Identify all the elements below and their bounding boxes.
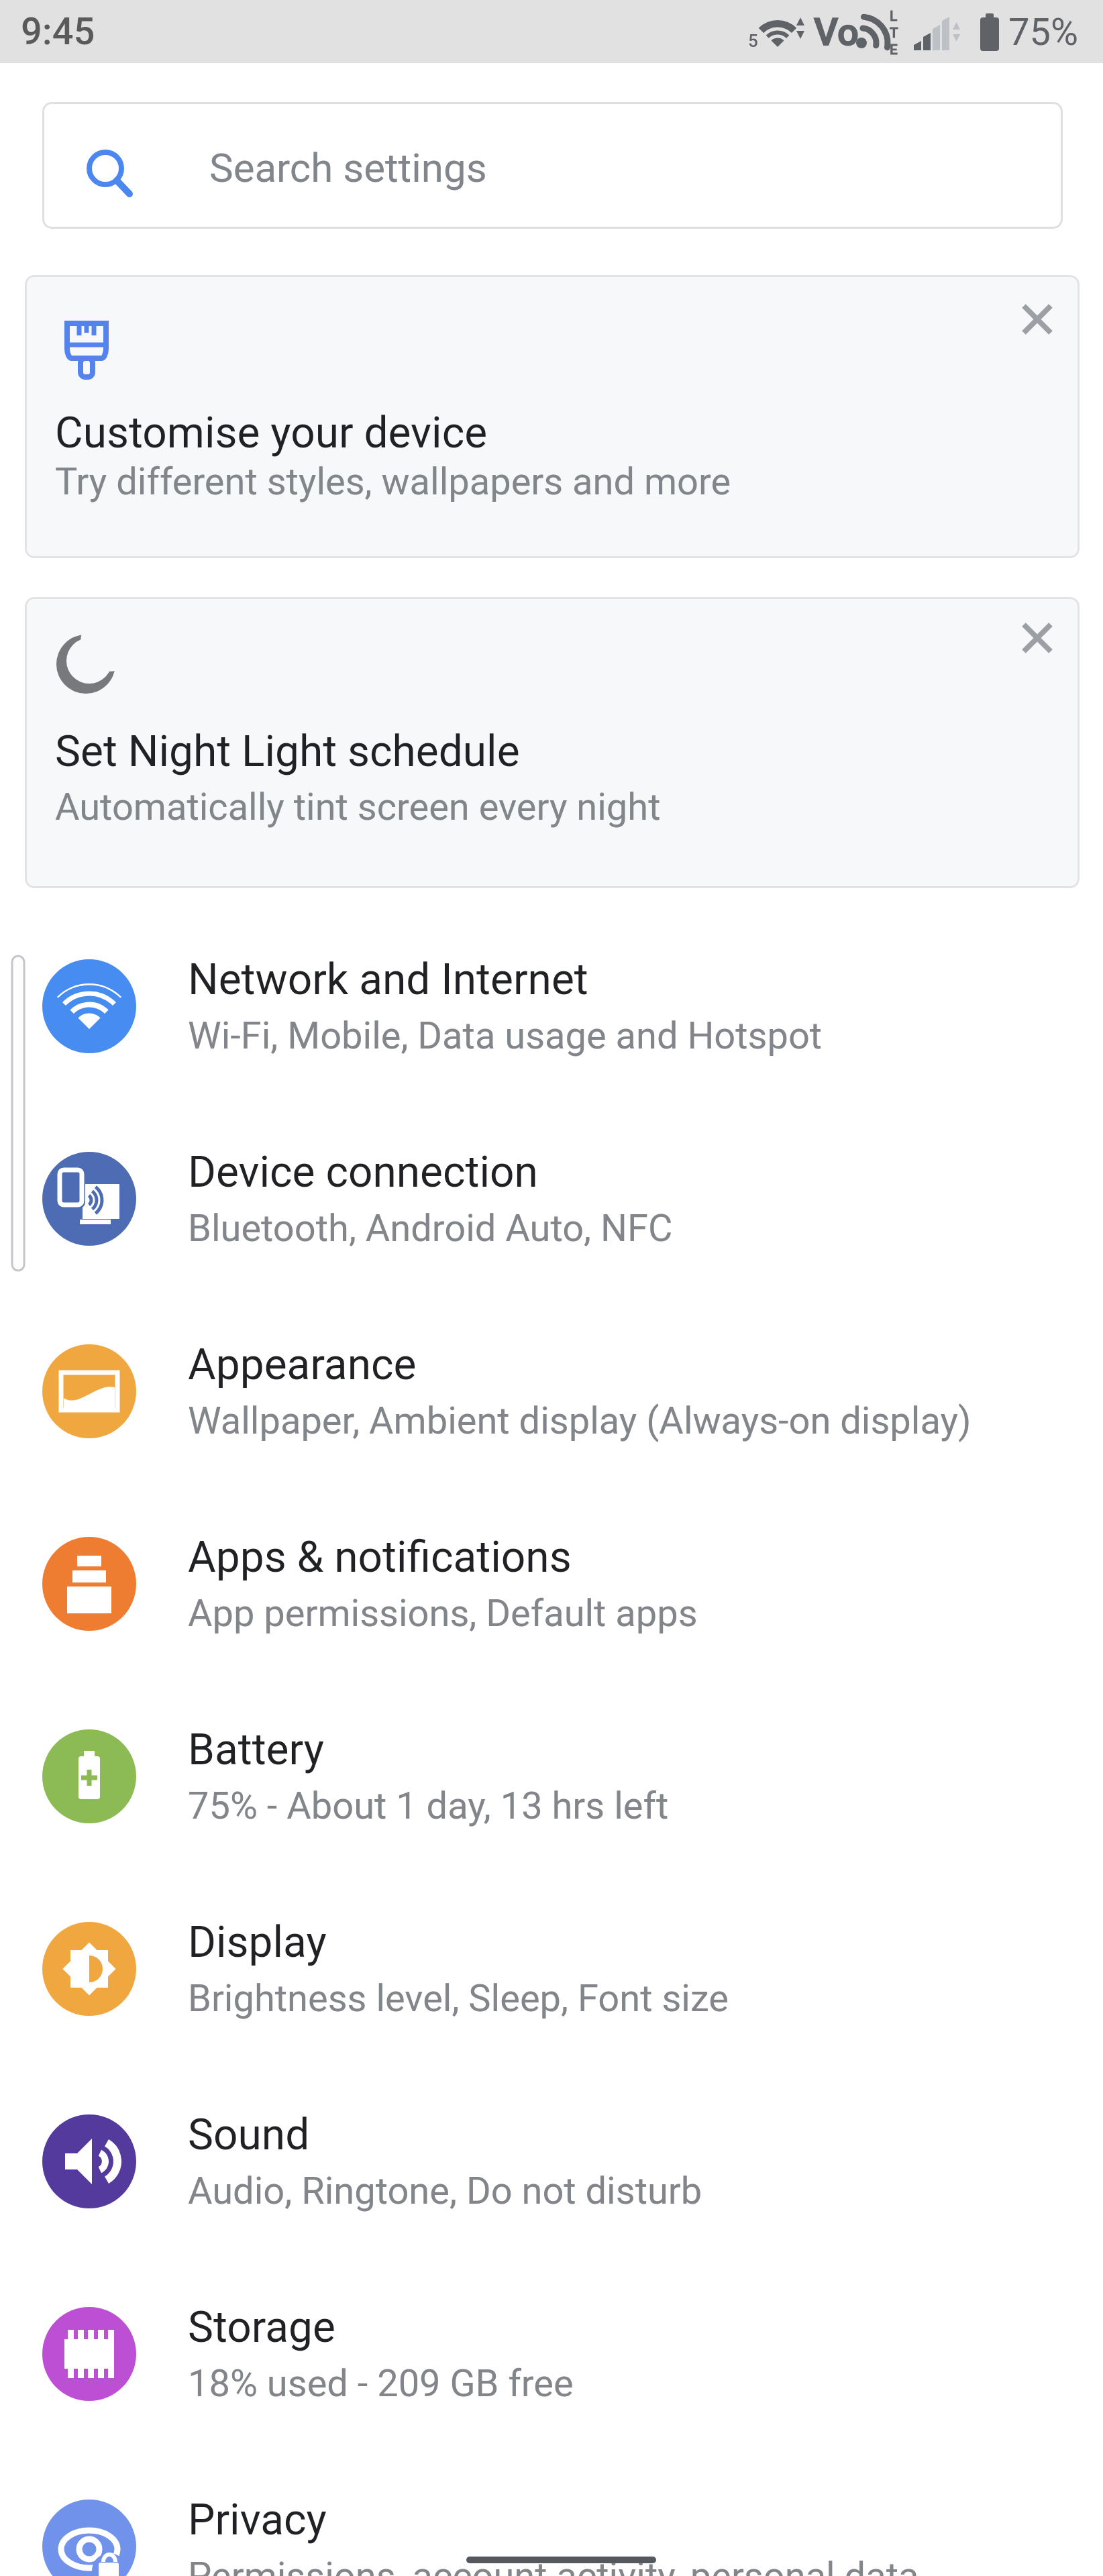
staticText: App permissions, Default apps: [188, 1591, 698, 1635]
staticText: Search settings: [209, 144, 487, 191]
button[interactable]: Storage: [0, 2257, 1103, 2450]
button[interactable]: Battery: [0, 1680, 1103, 1872]
staticText: Vo: [814, 10, 859, 54]
button[interactable]: Privacy: [0, 2450, 1103, 2576]
staticText: Try different styles, wallpapers and mor…: [55, 460, 731, 504]
button[interactable]: Search settings: [42, 102, 1063, 229]
button[interactable]: Device connection: [0, 1102, 1103, 1295]
button[interactable]: Sound: [0, 2065, 1103, 2257]
staticText: Wallpaper, Ambient display (Always-on di…: [188, 1399, 971, 1443]
staticText: Wi-Fi, Mobile, Data usage and Hotspot: [188, 1014, 823, 1058]
staticText: 5: [748, 31, 758, 51]
staticText: Sound: [188, 2110, 310, 2160]
button[interactable]: Network and Internet: [0, 910, 1103, 1102]
staticText: T: [890, 25, 898, 42]
staticText: Privacy: [188, 2495, 327, 2545]
button[interactable]: [1005, 606, 1069, 670]
button[interactable]: Customise your device: [25, 275, 1080, 558]
staticText: Display: [188, 1917, 327, 1968]
staticText: Set Night Light schedule: [55, 727, 520, 777]
button[interactable]: Display: [0, 1872, 1103, 2065]
staticText: Automatically tint screen every night: [55, 785, 661, 829]
staticText: Bluetooth, Android Auto, NFC: [188, 1206, 673, 1250]
staticText: E: [890, 42, 898, 58]
staticText: L: [890, 8, 898, 25]
staticText: 75% - About 1 day, 13 hrs left: [188, 1784, 669, 1828]
staticText: Permissions, account activity, personal …: [188, 2554, 919, 2576]
button[interactable]: Set Night Light schedule: [25, 597, 1080, 888]
staticText: Battery: [188, 1725, 325, 1775]
button[interactable]: Appearance: [0, 1295, 1103, 1487]
staticText: 18% used - 209 GB free: [188, 2361, 574, 2406]
staticText: Storage: [188, 2302, 335, 2353]
staticText: Customise your device: [55, 408, 488, 458]
staticText: Brightness level, Sleep, Font size: [188, 1976, 729, 2021]
staticText: Device connection: [188, 1147, 538, 1197]
staticText: 75%: [1008, 10, 1078, 54]
staticText: Audio, Ringtone, Do not disturb: [188, 2169, 702, 2213]
staticText: 9:45: [21, 9, 95, 54]
button[interactable]: Apps & notifications: [0, 1487, 1103, 1680]
button[interactable]: [1005, 287, 1069, 352]
staticText: Network and Internet: [188, 955, 588, 1005]
staticText: Apps & notifications: [188, 1532, 572, 1582]
staticText: Appearance: [188, 1340, 417, 1390]
